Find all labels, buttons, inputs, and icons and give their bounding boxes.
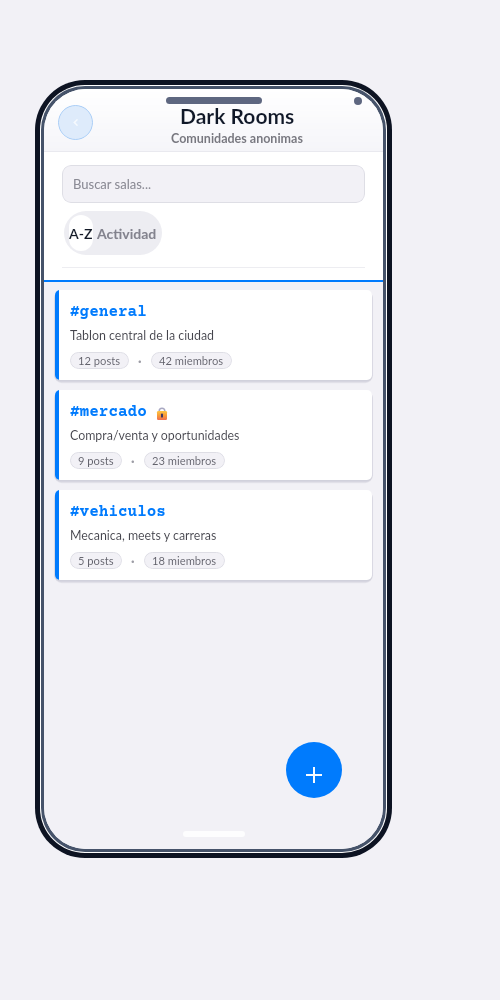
button[interactable]: #vehiculos — [55, 490, 372, 580]
staticText: #mercado — [70, 403, 147, 421]
staticText: A-Z — [69, 225, 93, 242]
button[interactable]: #general — [55, 290, 372, 380]
staticText: Dark Rooms — [180, 103, 295, 128]
button[interactable]: Buscar salas... — [62, 165, 365, 203]
button[interactable]: Actividad — [97, 225, 157, 242]
staticText: · — [131, 553, 135, 569]
button[interactable]: Crear sala — [286, 742, 342, 798]
staticText: Comunidades anonimas — [171, 131, 303, 146]
staticText: 9 posts — [78, 454, 114, 467]
staticText: 12 posts — [78, 354, 121, 367]
staticText: 18 miembros — [152, 554, 217, 567]
staticText: 42 miembros — [159, 354, 224, 367]
staticText: #general — [70, 303, 147, 321]
button[interactable]: A-Z — [69, 215, 93, 251]
staticText: #vehiculos — [70, 503, 166, 521]
staticText: · — [131, 453, 135, 469]
staticText: 5 posts — [78, 554, 114, 567]
staticText: 23 miembros — [152, 454, 217, 467]
staticText: Compra/venta y oportunidades — [70, 428, 240, 443]
staticText: Buscar salas... — [73, 176, 152, 192]
staticText: Tablon central de la ciudad — [70, 328, 215, 343]
staticText: Mecanica, meets y carreras — [70, 528, 217, 543]
staticText: · — [138, 353, 142, 369]
button[interactable]: #mercado — [55, 390, 372, 480]
button[interactable]: Atras — [58, 105, 93, 140]
